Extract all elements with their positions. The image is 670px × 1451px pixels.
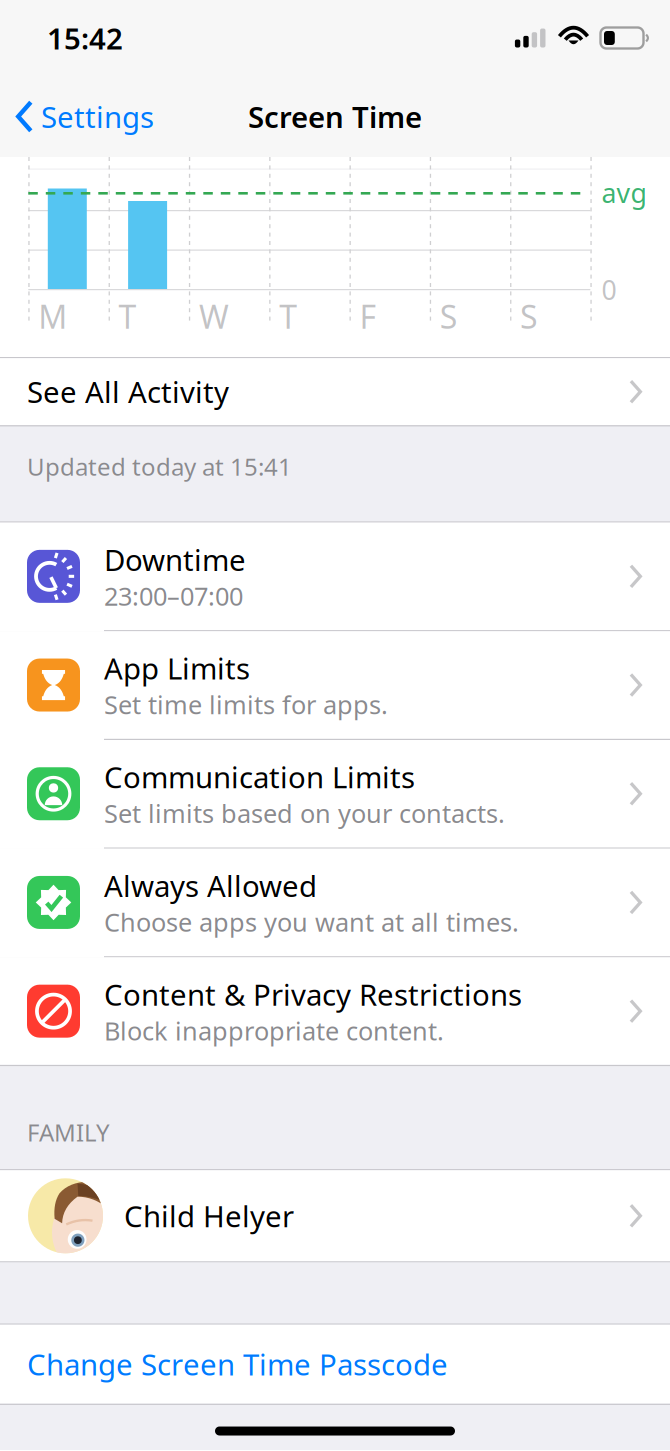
staticText: Screen Time [248, 97, 422, 136]
button[interactable]: Change Screen Time Passcode [0, 1325, 670, 1404]
staticText: 23:00–07:00 [104, 579, 243, 613]
staticText: Settings [41, 97, 154, 136]
button[interactable]: App Limits [0, 631, 670, 740]
staticText: S [520, 295, 538, 337]
staticText: avg [601, 175, 646, 210]
staticText: App Limits [104, 649, 250, 688]
staticText: M [38, 295, 67, 337]
button[interactable]: Always Allowed [0, 849, 670, 957]
staticText: Block inappropriate content. [104, 1014, 444, 1047]
staticText: Content & Privacy Restrictions [104, 975, 522, 1014]
button[interactable]: Settings [0, 85, 154, 148]
button[interactable]: See All Activity [0, 358, 670, 425]
button[interactable]: Child Helyer [0, 1170, 670, 1261]
staticText: See All Activity [27, 372, 229, 411]
staticText: S [440, 295, 458, 337]
staticText: T [279, 295, 297, 337]
button[interactable]: Downtime [0, 523, 670, 631]
staticText: Child Helyer [124, 1196, 294, 1235]
staticText: Change Screen Time Passcode [27, 1345, 448, 1384]
staticText: Updated today at 15:41 [27, 450, 292, 482]
staticText: Set time limits for apps. [104, 688, 388, 721]
staticText: 0 [601, 272, 616, 307]
button[interactable]: Communication Limits [0, 740, 670, 849]
button[interactable]: Content & Privacy Restrictions [0, 957, 670, 1065]
staticText: FAMILY [27, 1116, 110, 1148]
staticText: T [119, 295, 137, 337]
staticText: Downtime [104, 540, 246, 579]
staticText: Always Allowed [104, 866, 317, 905]
staticText: Communication Limits [104, 757, 415, 796]
staticText: 15:42 [47, 18, 123, 57]
staticText: Set limits based on your contacts. [104, 796, 505, 830]
staticText: Choose apps you want at all times. [104, 905, 519, 939]
staticText: W [199, 295, 229, 337]
staticText: F [359, 295, 376, 337]
